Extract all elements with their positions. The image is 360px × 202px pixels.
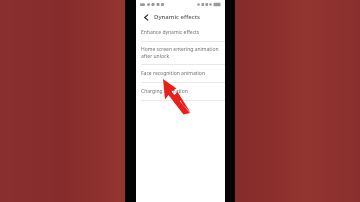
button[interactable]: Charging animation [136, 83, 225, 100]
button[interactable]: Home screen entering animation after unl… [136, 42, 225, 64]
staticText: Home screen entering animation after unl… [141, 46, 220, 60]
button[interactable]: Back [140, 11, 152, 23]
staticText: Enhance dynamic effects [141, 29, 200, 36]
button[interactable]: Face recognition animation [136, 65, 225, 82]
staticText: Dynamic effects [154, 13, 200, 21]
staticText: Charging animation [141, 88, 188, 95]
button[interactable]: Enhance dynamic effects [136, 24, 225, 41]
staticText: Face recognition animation [141, 70, 205, 77]
